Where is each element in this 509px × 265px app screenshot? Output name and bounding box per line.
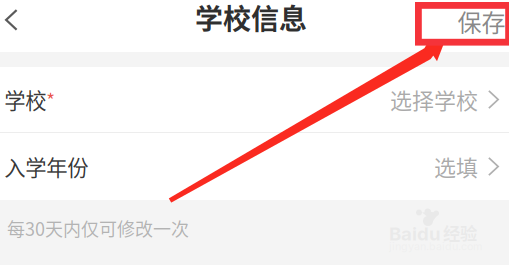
staticText: 学校信息	[195, 0, 307, 37]
staticText: 经验	[443, 220, 477, 245]
staticText: 保存	[457, 4, 505, 38]
button[interactable]: 保存	[0, 0, 504, 51]
staticText: 每30天内仅可修改一次	[7, 215, 189, 241]
button[interactable]: Back	[0, 0, 32, 52]
staticText: 选填	[434, 151, 478, 182]
button[interactable]: 学校	[0, 67, 509, 132]
staticText: 学校	[4, 84, 46, 115]
staticText: 选择学校	[390, 84, 478, 115]
staticText: 入学年份	[4, 151, 88, 182]
staticText: Baidu	[389, 222, 441, 245]
staticText: *	[46, 86, 55, 113]
button[interactable]: 入学年份	[0, 133, 509, 200]
